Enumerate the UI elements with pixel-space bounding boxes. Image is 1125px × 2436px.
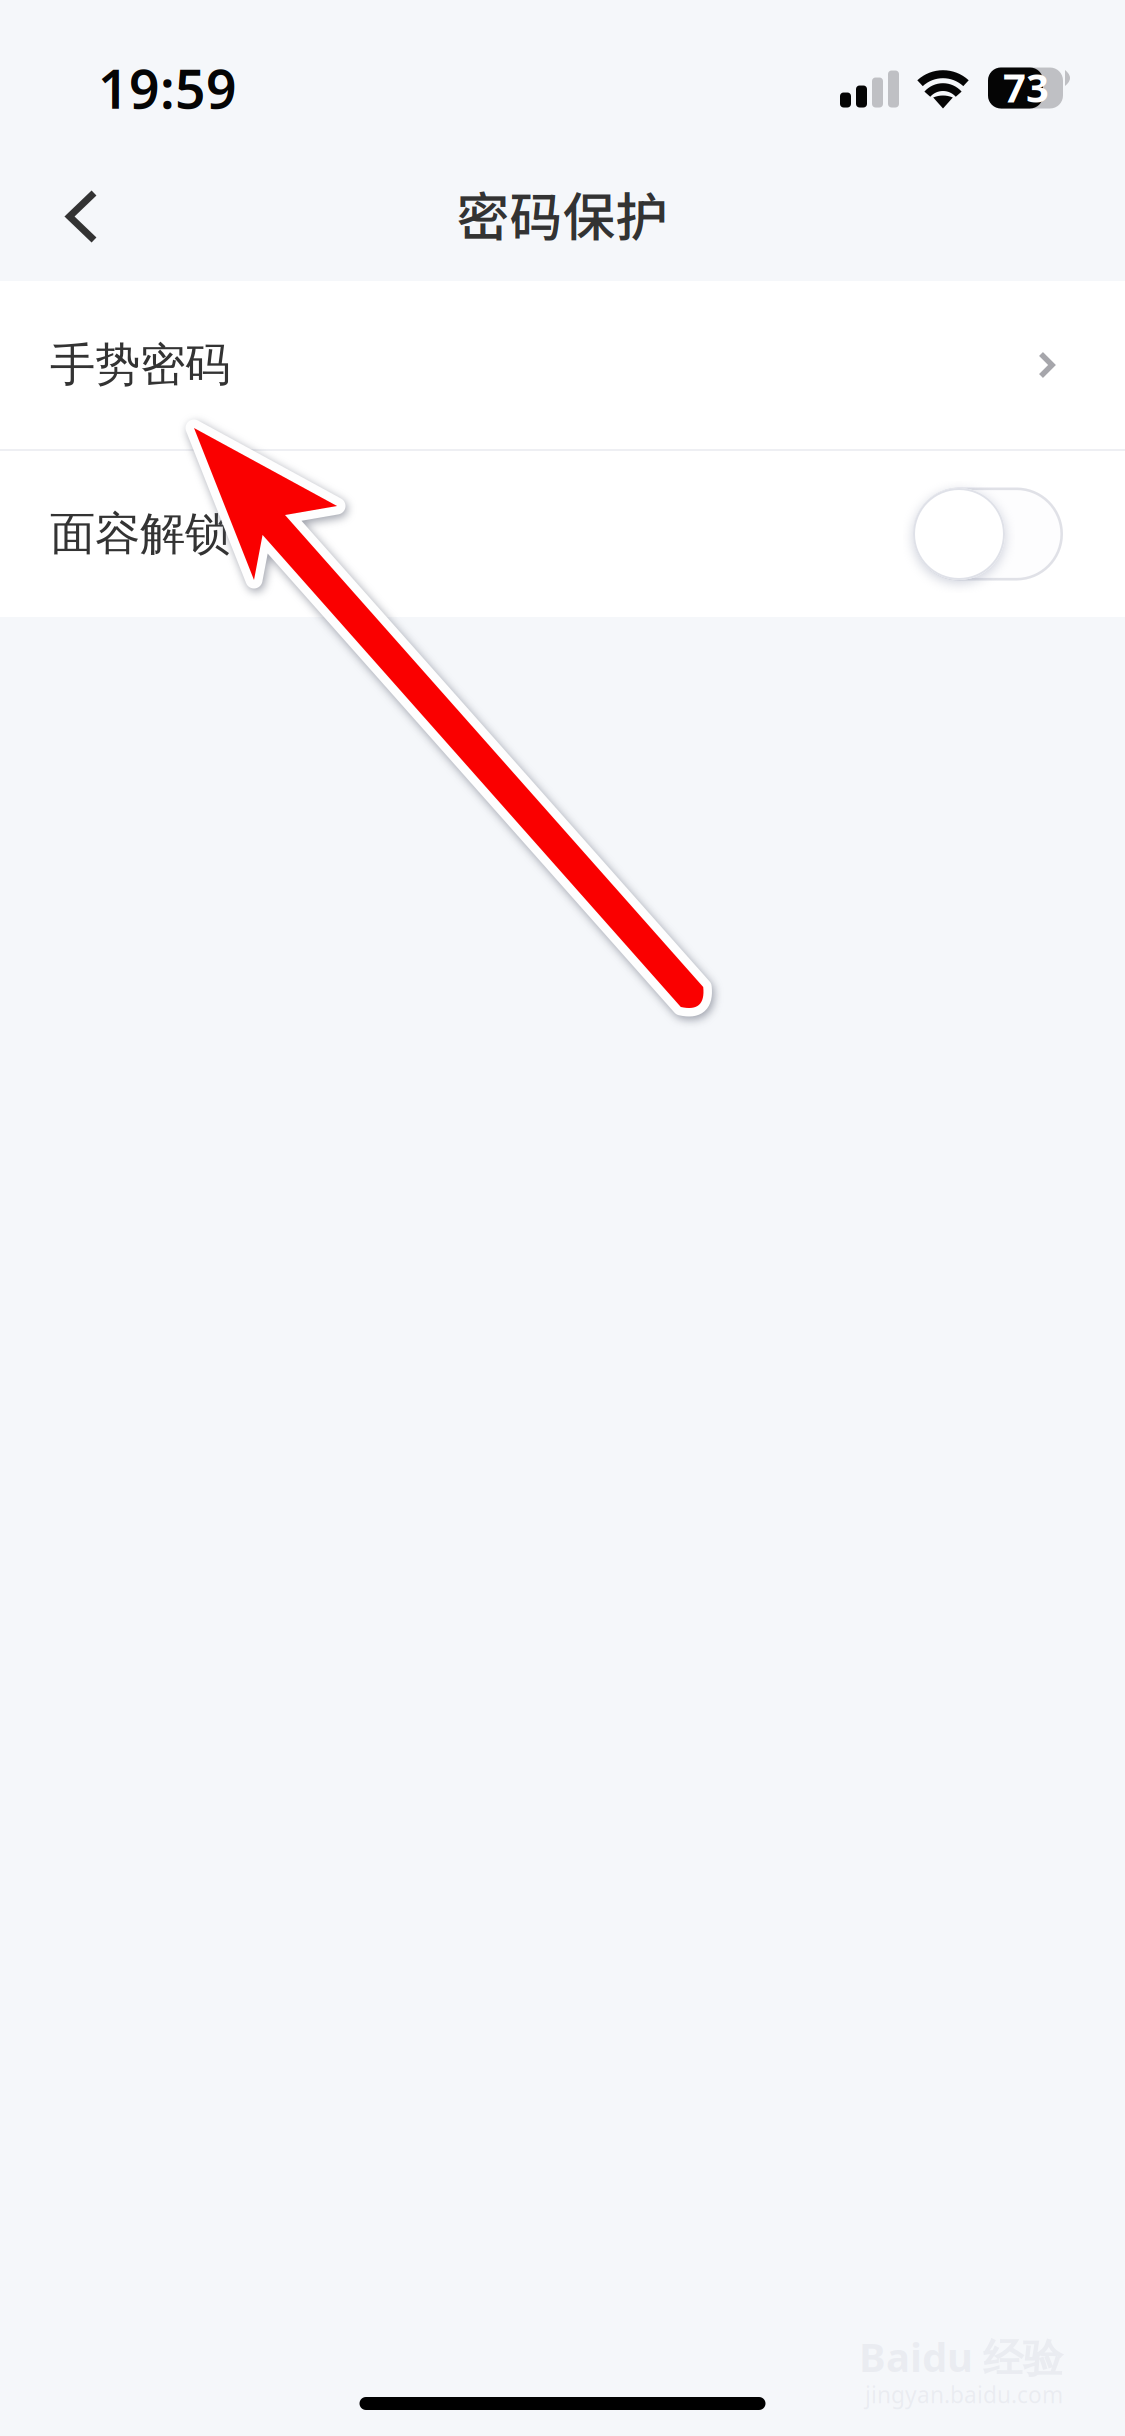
button[interactable]: 面容解锁开关 (913, 487, 1063, 580)
staticText: 手势密码 (50, 337, 230, 393)
button[interactable]: 返回 (27, 140, 137, 250)
staticText: jingyan.baidu.com (865, 2379, 1063, 2409)
staticText: 面容解锁 (50, 506, 230, 562)
staticText: 19:59 (98, 53, 237, 123)
button[interactable]: 手势密码 (0, 281, 1125, 449)
staticText: 73 (1003, 60, 1049, 113)
staticText: 密码保护 (456, 175, 668, 252)
staticText: Baidu 经验 (859, 2330, 1063, 2383)
